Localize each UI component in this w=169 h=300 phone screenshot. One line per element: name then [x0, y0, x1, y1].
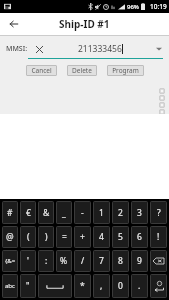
button[interactable]: ?: [150, 201, 167, 224]
staticText: 4: [99, 231, 104, 243]
staticText: 5: [118, 231, 123, 243]
staticText: (: [27, 231, 30, 243]
staticText: 10:19: [150, 2, 167, 11]
button[interactable]: Space: [38, 274, 72, 298]
staticText: 211333456: [78, 43, 122, 55]
staticText: 6: [137, 231, 142, 243]
button[interactable]: *: [74, 274, 91, 298]
button[interactable]: Program: [107, 65, 144, 76]
button[interactable]: 5: [112, 226, 129, 248]
button[interactable]: 9: [131, 250, 148, 272]
staticText: 1: [99, 207, 104, 219]
button[interactable]: Delete: [67, 65, 97, 76]
button[interactable]: 2: [112, 201, 129, 224]
button[interactable]: ): [38, 226, 54, 248]
button[interactable]: Cancel: [26, 65, 57, 76]
staticText: #: [7, 207, 13, 219]
staticText: ,: [100, 280, 103, 292]
staticText: 9: [137, 255, 142, 267]
staticText: 8: [118, 255, 123, 267]
staticText: +: [80, 231, 85, 243]
button[interactable]: %: [56, 250, 72, 272]
button[interactable]: -: [74, 201, 91, 224]
button[interactable]: @: [2, 226, 18, 248]
staticText: abc: [5, 282, 15, 290]
button[interactable]: 6: [131, 226, 148, 248]
button[interactable]: abc: [2, 274, 18, 298]
button[interactable]: +: [74, 226, 91, 248]
staticText: *: [80, 280, 85, 292]
staticText: 7: [99, 255, 104, 267]
button[interactable]: &: [38, 201, 54, 224]
button[interactable]: 7: [93, 250, 110, 272]
staticText: €: [26, 207, 31, 219]
staticText: 96%: [127, 3, 139, 11]
staticText: %: [60, 255, 68, 267]
button[interactable]: Back: [5, 15, 23, 33]
staticText: ?: [157, 207, 161, 219]
button[interactable]: €: [20, 201, 36, 224]
staticText: ): [45, 231, 48, 243]
staticText: ': [27, 255, 29, 267]
button[interactable]: (: [20, 226, 36, 248]
staticText: 0: [118, 280, 123, 292]
button[interactable]: 3: [131, 201, 148, 224]
button[interactable]: 1: [93, 201, 110, 224]
button[interactable]: Clear: [32, 42, 46, 56]
staticText: MMSI:: [6, 44, 28, 54]
button[interactable]: !: [150, 226, 167, 248]
button[interactable]: .: [131, 274, 148, 298]
button[interactable]: Dropdown: [152, 42, 166, 56]
button[interactable]: ": [20, 274, 36, 298]
staticText: .: [138, 280, 141, 292]
button[interactable]: _: [56, 201, 72, 224]
button[interactable]: #: [2, 201, 18, 224]
staticText: -: [81, 207, 84, 219]
button[interactable]: :: [38, 250, 54, 272]
staticText: Program: [112, 66, 139, 75]
button[interactable]: ,: [93, 274, 110, 298]
staticText: Delete: [72, 66, 92, 75]
button[interactable]: 0: [112, 274, 129, 298]
staticText: @: [6, 231, 14, 243]
button[interactable]: /: [74, 250, 91, 272]
staticText: !: [157, 231, 160, 243]
button[interactable]: Backspace: [150, 250, 167, 272]
staticText: _: [62, 207, 66, 219]
staticText: 2: [118, 207, 123, 219]
staticText: /: [81, 255, 85, 267]
button[interactable]: {&=: [2, 250, 18, 272]
button[interactable]: Enter: [150, 274, 167, 298]
staticText: 3: [137, 207, 142, 219]
button[interactable]: 8: [112, 250, 129, 272]
staticText: :: [45, 255, 48, 267]
button[interactable]: =: [56, 226, 72, 248]
button[interactable]: ': [20, 250, 36, 272]
button[interactable]: 4: [93, 226, 110, 248]
staticText: =: [62, 231, 67, 243]
staticText: Cancel: [31, 66, 52, 75]
staticText: Ship-ID #1: [59, 17, 110, 31]
staticText: &: [43, 207, 50, 219]
staticText: {&=: [5, 257, 16, 265]
staticText: ": [26, 280, 30, 292]
